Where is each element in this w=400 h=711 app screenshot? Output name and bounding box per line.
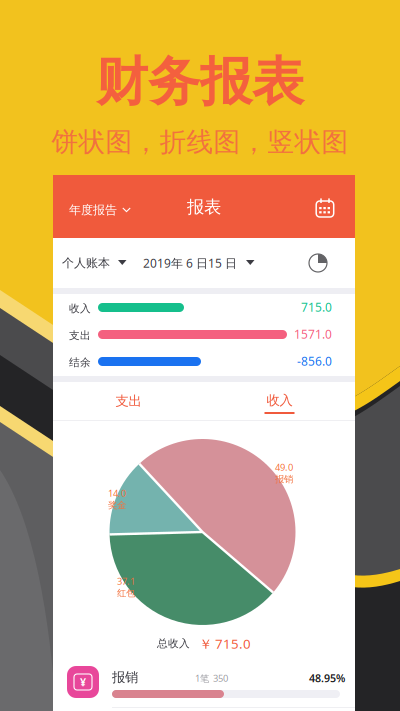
button[interactable]: 2019年 6 日15 日 xyxy=(143,251,255,275)
staticText: 红包 xyxy=(117,587,135,599)
staticText: 1笔 350 xyxy=(195,672,228,684)
staticText: -856.0 xyxy=(297,353,332,369)
staticText: 1571.0 xyxy=(294,326,332,342)
staticText: 49.0 xyxy=(275,461,293,473)
button[interactable]: Chart type xyxy=(308,253,328,273)
staticText: ¥ xyxy=(80,675,86,689)
staticText: 财务报表 xyxy=(96,50,304,114)
button[interactable]: 年度报告 xyxy=(69,198,131,222)
button[interactable]: 收入 xyxy=(204,382,355,420)
staticText: 总收入 xyxy=(157,637,190,650)
button[interactable]: ¥ xyxy=(53,660,355,711)
staticText: 支出 xyxy=(69,329,91,342)
staticText: 饼状图，折线图，竖状图 xyxy=(51,126,348,158)
staticText: 报销 xyxy=(112,669,138,685)
staticText: 收入 xyxy=(69,302,91,315)
staticText: 48.95% xyxy=(309,671,345,685)
staticText: 年度报告 xyxy=(69,203,117,217)
staticText: 715.0 xyxy=(301,299,332,315)
staticText: 报表 xyxy=(187,196,221,218)
staticText: 支出 xyxy=(115,393,141,409)
staticText: 结余 xyxy=(69,356,91,369)
staticText: ￥ 715.0 xyxy=(199,635,251,652)
button[interactable]: Calendar xyxy=(314,197,336,219)
staticText: 个人账本 xyxy=(62,256,110,270)
staticText: 收入 xyxy=(266,392,292,408)
button[interactable]: 个人账本 xyxy=(62,251,127,275)
button[interactable]: 支出 xyxy=(53,382,204,420)
staticText: 37.1 xyxy=(117,575,135,587)
staticText: 奖金 xyxy=(108,499,126,511)
staticText: 14.0 xyxy=(108,487,126,499)
staticText: 报销 xyxy=(275,473,293,485)
staticText: 2019年 6 日15 日 xyxy=(143,255,237,271)
